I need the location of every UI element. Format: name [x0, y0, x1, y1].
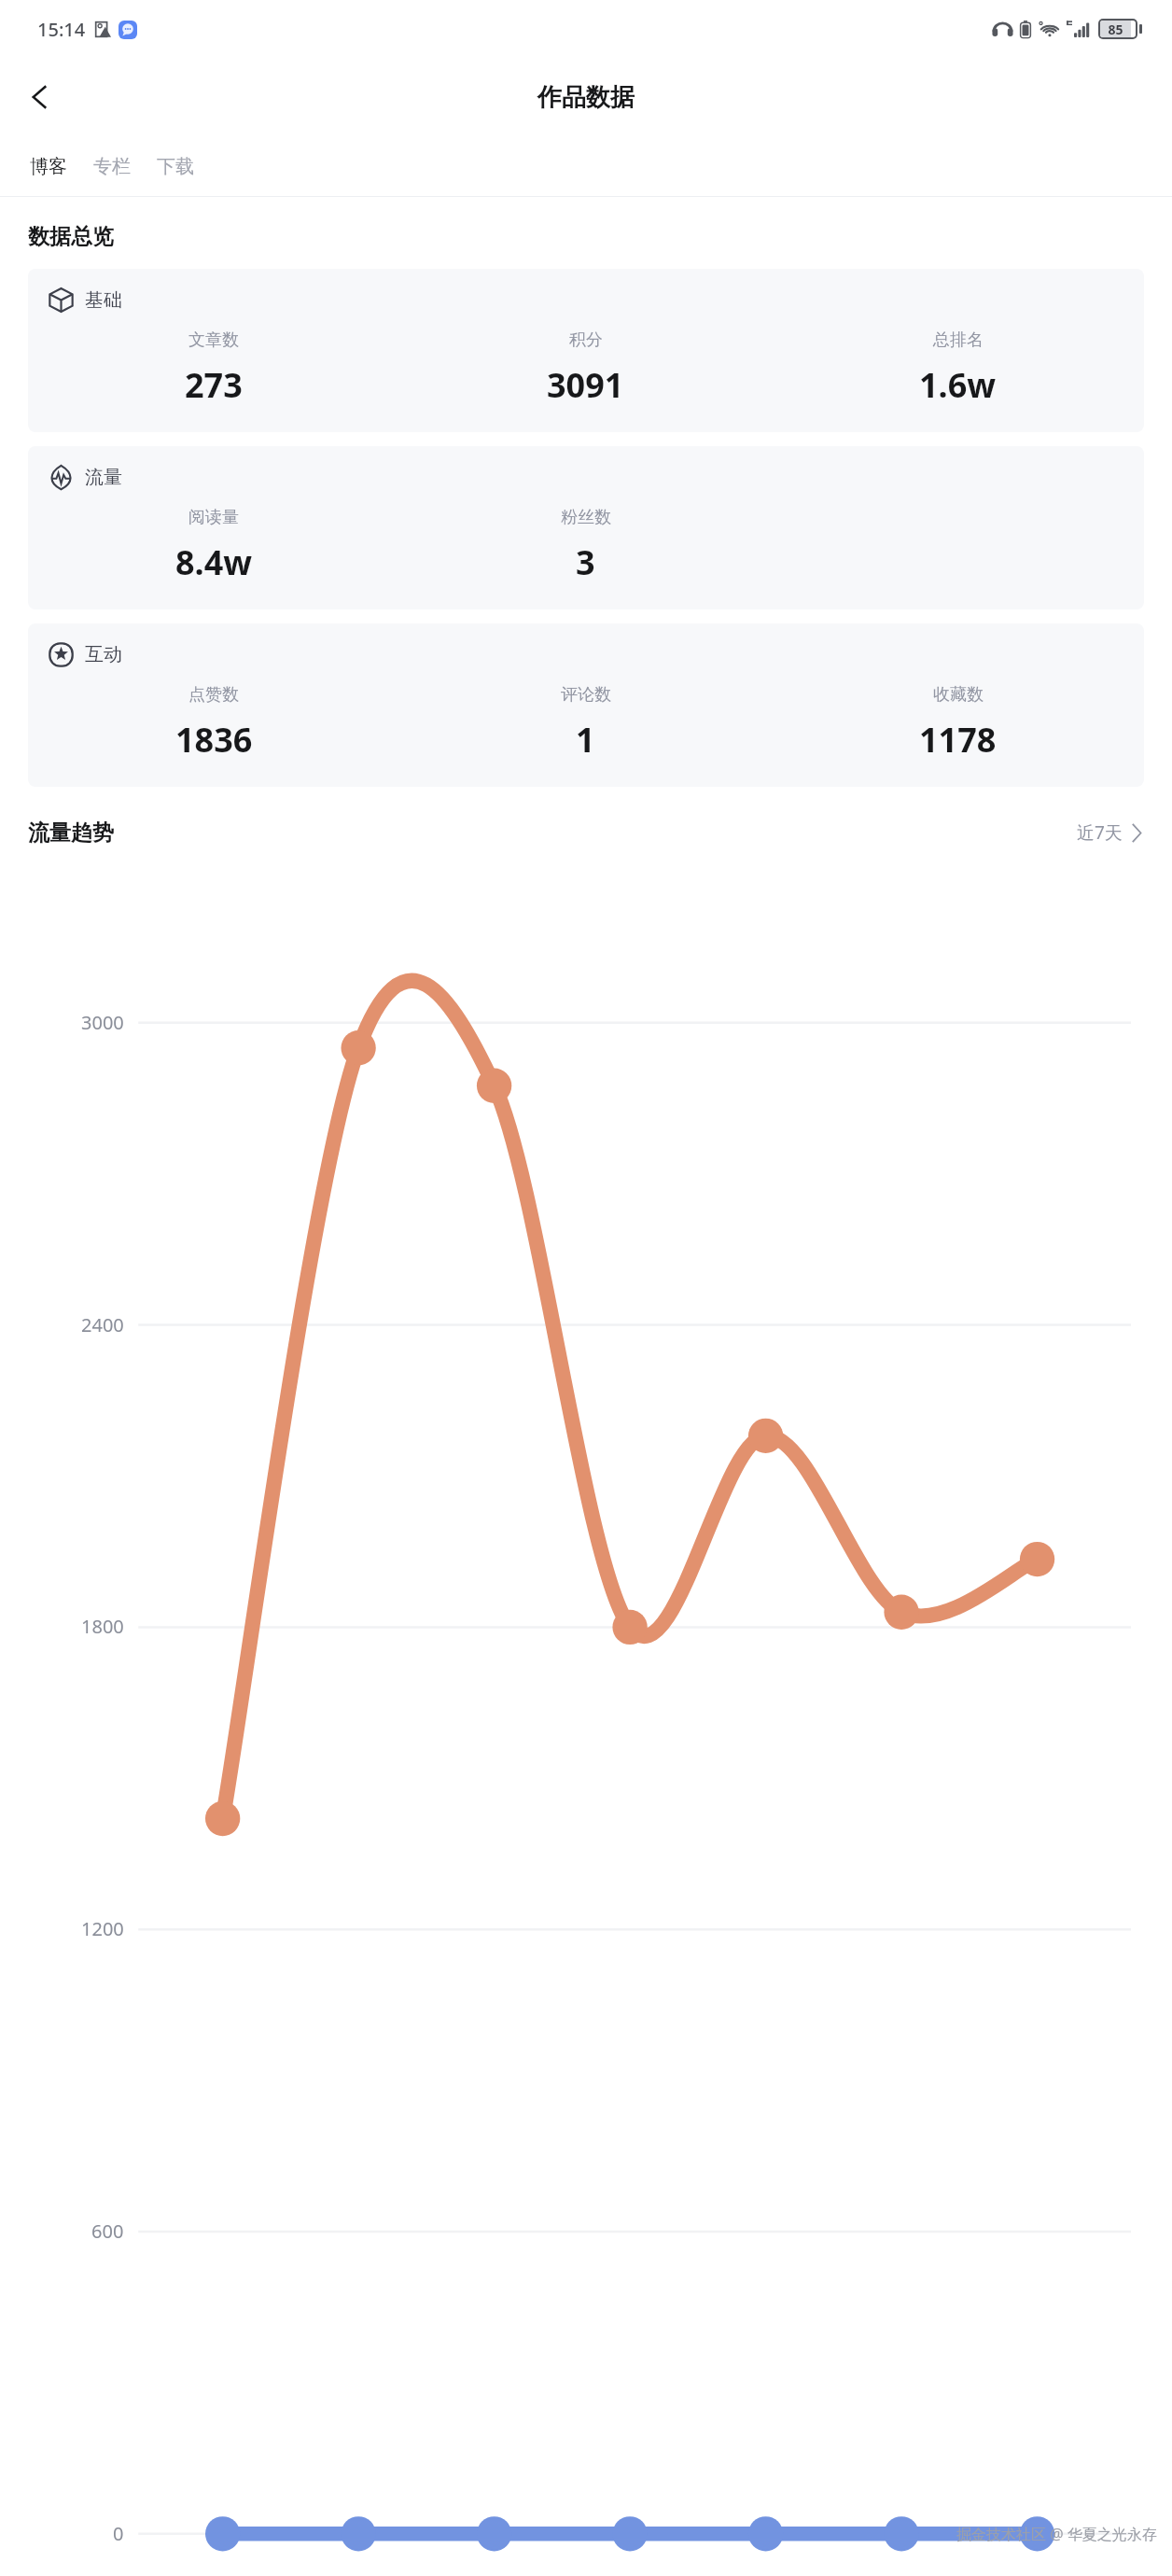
staticText: 1178	[919, 717, 997, 763]
staticText: 2400	[81, 1312, 124, 1337]
staticText: 专栏	[93, 155, 131, 178]
staticText: 下载	[157, 155, 194, 178]
staticText: 1800	[81, 1614, 124, 1639]
staticText: 流量	[85, 466, 122, 489]
staticText: 阅读量	[188, 507, 239, 528]
staticText: 1200	[81, 1916, 124, 1941]
staticText: 1	[576, 717, 595, 763]
button[interactable]: 互动	[28, 623, 1144, 787]
staticText: 1.6w	[919, 362, 997, 408]
button[interactable]: 流量	[28, 446, 1144, 609]
staticText: 文章数	[188, 329, 239, 351]
staticText: 数据总览	[28, 223, 114, 250]
staticText: 1836	[175, 717, 253, 763]
button[interactable]: 博客	[17, 146, 80, 188]
staticText: 粉丝数	[561, 507, 611, 528]
staticText: 评论数	[561, 684, 611, 706]
staticText: 博客	[30, 155, 67, 178]
button[interactable]: 基础	[28, 269, 1144, 432]
staticText: 互动	[85, 643, 122, 666]
staticText: 3000	[81, 1010, 124, 1035]
staticText: 15:14	[37, 17, 86, 42]
staticText: 85	[1100, 21, 1131, 37]
staticText: 273	[185, 362, 243, 408]
staticText: 积分	[569, 329, 603, 351]
staticText: 600	[91, 2219, 124, 2244]
staticText: 总排名	[933, 329, 984, 351]
button[interactable]: 下载	[144, 146, 207, 188]
staticText: 基础	[85, 288, 122, 312]
staticText: 掘金技术社区 @ 华夏之光永存	[956, 2524, 1157, 2544]
staticText: 作品数据	[537, 82, 635, 113]
staticText: 点赞数	[188, 684, 239, 706]
staticText: 0	[113, 2521, 124, 2546]
staticText: 3	[576, 539, 595, 585]
staticText: 8.4w	[175, 539, 253, 585]
staticText: 3091	[547, 362, 624, 408]
staticText: 收藏数	[933, 684, 984, 706]
staticText: 近7天	[1077, 820, 1123, 845]
button[interactable]: Back	[11, 68, 69, 126]
button[interactable]: 近7天	[1071, 811, 1148, 854]
staticText: 流量趋势	[28, 819, 114, 847]
button[interactable]: 专栏	[80, 146, 144, 188]
